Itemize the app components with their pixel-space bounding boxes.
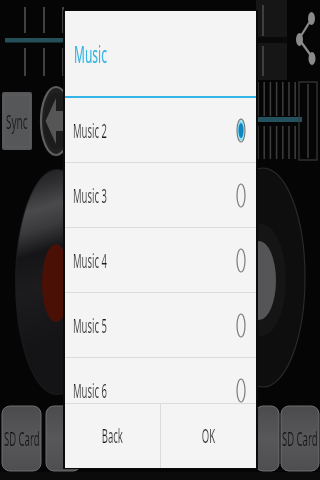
staticText: Music 5 (73, 313, 107, 339)
button[interactable]: Music 4 (65, 228, 256, 293)
button[interactable]: Music 2 (65, 98, 256, 163)
button[interactable]: Share (294, 10, 320, 70)
staticText: SD Card (4, 426, 40, 452)
button[interactable]: OK (161, 404, 256, 468)
staticText: Back (102, 423, 123, 449)
staticText: Music 2 (73, 118, 107, 144)
staticText: Music 4 (73, 248, 107, 274)
button[interactable]: Music 3 (65, 163, 256, 228)
staticText: Music 6 (73, 378, 107, 403)
button[interactable]: Back (65, 404, 160, 468)
button[interactable]: Sync (2, 92, 32, 150)
button[interactable]: SD Card (2, 406, 41, 471)
button[interactable]: Music 6 (65, 358, 256, 403)
button[interactable]: Previous track (41, 87, 71, 155)
staticText: Sync (6, 108, 28, 135)
staticText: Music (74, 37, 107, 70)
staticText: OK (202, 423, 215, 449)
button[interactable]: Music 5 (65, 293, 256, 358)
staticText: Music 3 (73, 183, 107, 209)
staticText: SD Card (282, 426, 318, 452)
button[interactable]: SD Card (281, 406, 319, 471)
